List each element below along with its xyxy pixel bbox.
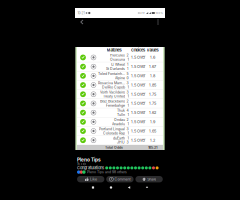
button[interactable]: More options: [155, 19, 161, 25]
button[interactable]: Keyboard: [138, 184, 156, 191]
staticText: 1.5 Over: [131, 110, 145, 115]
staticText: Choices: [131, 48, 145, 52]
staticText: Rosaciva Mamuela: [98, 81, 125, 85]
button[interactable]: Share: [135, 176, 163, 182]
staticText: 1.8: [150, 73, 155, 78]
staticText: Total Odds: [105, 145, 123, 150]
staticText: 1.5 Over: [131, 129, 145, 133]
staticText: 3: [126, 90, 128, 94]
staticText: 1: [127, 67, 128, 71]
staticText: Anadolu: [112, 122, 125, 126]
staticText: Pleno Tips: [77, 157, 101, 163]
button[interactable]: Back: [120, 184, 138, 191]
staticText: 1.62: [149, 110, 156, 115]
staticText: 1: [127, 62, 128, 67]
staticText: 1.5 Over: [131, 73, 145, 78]
staticText: Hercules: [110, 53, 125, 57]
staticText: 1.9: [150, 119, 155, 124]
staticText: Treaty United: [103, 94, 125, 98]
staticText: 1.5 Over: [131, 55, 145, 60]
staticText: 3: [126, 81, 128, 85]
staticText: Osasuna: [110, 57, 125, 62]
staticText: Voith Vacildeiro: [100, 90, 125, 94]
staticText: Matches: [106, 48, 121, 52]
staticText: Toled Fontainhas: [98, 72, 125, 76]
staticText: 1.5 Over: [131, 101, 145, 106]
staticText: 1.5 Over: [131, 92, 145, 97]
staticText: Ondau: [114, 118, 125, 122]
staticText: Like: [90, 177, 97, 181]
staticText: Values: [146, 48, 158, 52]
staticText: 185.21: [148, 145, 157, 150]
staticText: 4: [126, 108, 128, 113]
staticText: Tulln: [117, 113, 125, 117]
staticText: 1.85: [149, 83, 156, 87]
staticText: JHU: [117, 140, 125, 144]
staticText: Braz Blackberio: [100, 99, 125, 103]
staticText: 1.75: [149, 101, 156, 106]
button[interactable]: Comment: [106, 176, 134, 182]
staticText: 1.5 Over: [131, 138, 145, 143]
staticText: 10:21: [77, 11, 84, 15]
button[interactable]: Recents: [84, 184, 102, 191]
staticText: 1.5 Over: [131, 64, 145, 69]
staticText: DelRio Capob: [102, 85, 125, 89]
staticText: 1.75: [149, 92, 156, 97]
staticText: 1.5 Over: [131, 83, 145, 87]
staticText: 1.6: [150, 55, 155, 60]
staticText: LTE: [140, 11, 145, 15]
staticText: 1h: [77, 162, 80, 166]
staticText: 2: [126, 99, 128, 103]
staticText: 100%: [155, 11, 162, 15]
staticText: 2: [126, 53, 128, 57]
staticText: Pleno Tips and 98 others: [87, 170, 127, 174]
staticText: 3: [126, 127, 128, 131]
staticText: 1.2: [150, 138, 155, 143]
staticText: Fenerbahge: [106, 103, 125, 108]
button[interactable]: Like: [77, 176, 104, 182]
staticText: 2: [126, 118, 128, 122]
staticText: Portland Lingual: [99, 127, 125, 131]
staticText: 5: [126, 72, 128, 76]
button[interactable]: Back: [79, 19, 85, 25]
staticText: 3: [126, 140, 128, 144]
staticText: 1.67: [149, 64, 156, 69]
staticText: 1.5 Over: [131, 119, 145, 124]
staticText: Thuk: [117, 108, 125, 113]
staticText: Comment: [115, 177, 131, 181]
staticText: duEarth: [113, 136, 125, 140]
staticText: Alpine: [115, 76, 125, 80]
staticText: 1.65: [149, 129, 156, 133]
staticText: St Darlands: [106, 67, 125, 71]
staticText: 0: [126, 76, 128, 80]
button[interactable]: Home: [102, 184, 120, 191]
staticText: Colorado Rap: [103, 131, 125, 135]
staticText: U. Wheat: [111, 62, 125, 67]
staticText: Share: [147, 177, 156, 181]
staticText: Congratulations: [77, 165, 104, 170]
